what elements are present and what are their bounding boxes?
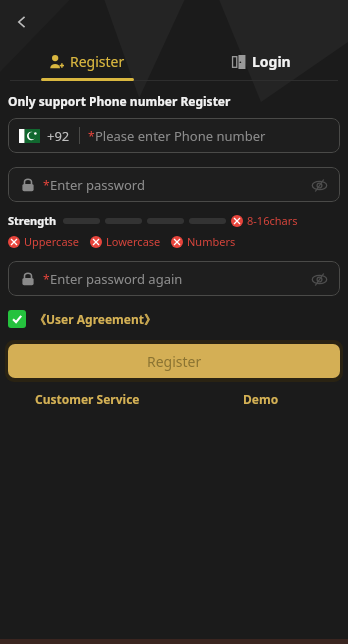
button[interactable]: Login [174, 44, 348, 78]
staticText: Numbers [187, 234, 236, 249]
button[interactable]: Select country code [8, 118, 340, 153]
staticText: * [43, 177, 50, 193]
staticText: Demo [243, 391, 279, 407]
staticText: 《User Agreement》 [34, 311, 156, 327]
staticText: Uppercase [24, 234, 80, 249]
button[interactable]: 《User Agreement》 [8, 310, 156, 328]
button[interactable]: Register [0, 44, 174, 78]
staticText: Enter password again [50, 270, 183, 288]
staticText: * [43, 271, 50, 287]
button[interactable]: Register [8, 344, 340, 378]
button[interactable]: Customer Service [0, 391, 174, 407]
staticText: Register [147, 352, 202, 371]
staticText: 8-16chars [247, 213, 298, 228]
staticText: Login [252, 52, 291, 71]
staticText: +92 [47, 127, 70, 145]
button[interactable]: Show password [309, 175, 329, 195]
button[interactable]: Back [0, 0, 44, 44]
staticText: Enter password [50, 176, 145, 194]
staticText: Only support Phone number Register [8, 93, 231, 109]
staticText: Strength [8, 213, 57, 228]
staticText: Customer Service [35, 391, 140, 407]
button[interactable]: * [8, 167, 340, 202]
staticText: Lowercase [106, 234, 161, 249]
staticText: Register [70, 52, 125, 71]
staticText: Please enter Phone number [95, 127, 266, 145]
button[interactable]: * [8, 261, 340, 296]
button[interactable]: Show password [309, 269, 329, 289]
button[interactable]: Select country code [19, 129, 40, 143]
staticText: * [88, 128, 95, 144]
button[interactable]: Demo [174, 391, 348, 407]
